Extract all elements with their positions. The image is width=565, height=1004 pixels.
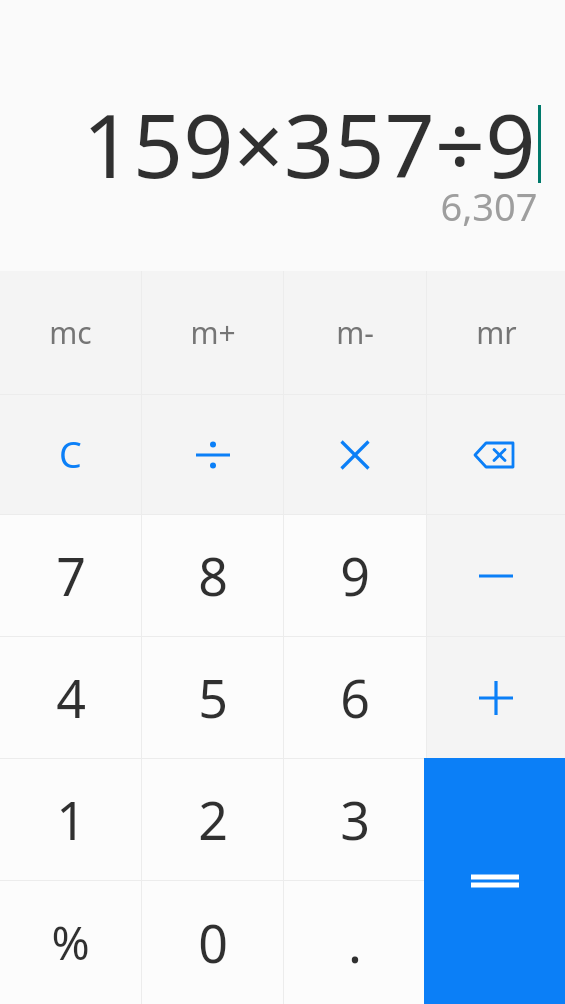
button[interactable]: mr xyxy=(427,271,565,394)
button[interactable]: 7 xyxy=(0,515,141,636)
button[interactable]: 2 xyxy=(142,759,283,880)
staticText: mr xyxy=(476,312,517,353)
button[interactable]: Plus xyxy=(427,637,565,758)
button[interactable]: 6 xyxy=(284,637,426,758)
button[interactable]: 5 xyxy=(142,637,283,758)
button[interactable]: Minus xyxy=(427,515,565,636)
staticText: 0 xyxy=(198,907,228,978)
button[interactable]: mc xyxy=(0,271,141,394)
staticText: C xyxy=(59,430,82,479)
staticText: 1 xyxy=(56,784,86,855)
button[interactable]: 3 xyxy=(284,759,426,880)
button[interactable]: Backspace xyxy=(427,395,565,514)
button[interactable]: Multiply xyxy=(284,395,426,514)
button[interactable]: 9 xyxy=(284,515,426,636)
staticText: 4 xyxy=(56,662,86,733)
button[interactable]: . xyxy=(284,881,426,1004)
button[interactable]: Divide xyxy=(142,395,283,514)
button[interactable]: m+ xyxy=(142,271,283,394)
staticText: 5 xyxy=(198,662,228,733)
staticText: . xyxy=(348,907,362,978)
staticText: m- xyxy=(336,312,374,353)
button[interactable]: Equals xyxy=(424,758,565,1004)
staticText: 2 xyxy=(198,784,228,855)
button[interactable]: 4 xyxy=(0,637,141,758)
button[interactable]: % xyxy=(0,881,141,1004)
staticText: 6,307 xyxy=(440,180,538,232)
staticText: 7 xyxy=(56,540,86,611)
button[interactable]: C xyxy=(0,395,141,514)
staticText: 6 xyxy=(340,662,370,733)
button[interactable]: 0 xyxy=(142,881,283,1004)
staticText: mc xyxy=(49,312,92,353)
staticText: 159×357÷9 xyxy=(82,84,536,204)
staticText: m+ xyxy=(190,312,236,353)
button[interactable]: 1 xyxy=(0,759,141,880)
button[interactable]: 8 xyxy=(142,515,283,636)
button[interactable]: m- xyxy=(284,271,426,394)
staticText: 3 xyxy=(340,784,370,855)
staticText: 8 xyxy=(198,540,228,611)
staticText: % xyxy=(51,911,90,974)
staticText: 9 xyxy=(340,540,370,611)
